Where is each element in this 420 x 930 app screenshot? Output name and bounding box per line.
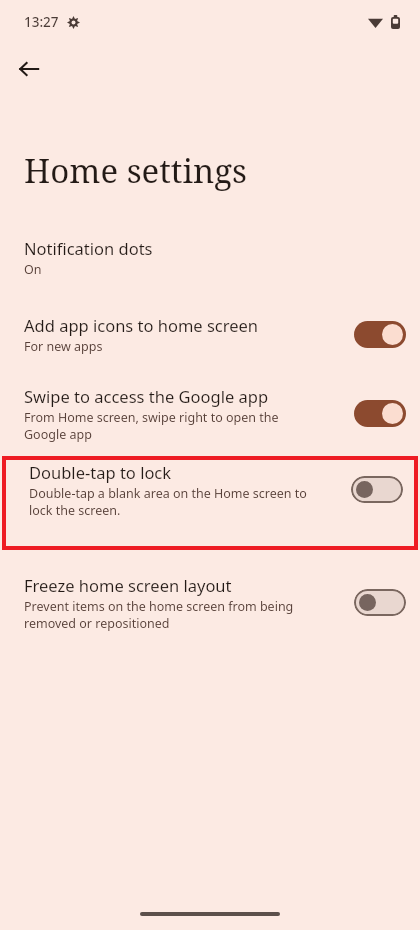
button[interactable]: Back — [10, 50, 48, 88]
button[interactable]: Double-tap to lock — [7, 461, 413, 518]
staticText: From Home screen, swipe right to open th… — [24, 409, 279, 442]
button[interactable]: Add app icons to home screen — [0, 314, 420, 355]
staticText: Add app icons to home screen — [24, 314, 259, 336]
button[interactable]: Swipe to access the Google app — [0, 385, 420, 442]
button[interactable]: Toggle off — [354, 589, 406, 616]
button[interactable]: Toggle on — [354, 321, 406, 348]
button[interactable]: Toggle on — [354, 400, 406, 427]
staticText: Swipe to access the Google app — [24, 385, 269, 407]
staticText: For new apps — [24, 338, 103, 355]
staticText: Freeze home screen layout — [24, 574, 232, 596]
staticText: Prevent items on the home screen from be… — [24, 598, 294, 631]
staticText: Double-tap a blank area on the Home scre… — [29, 485, 307, 518]
button[interactable]: Freeze home screen layout — [0, 574, 420, 631]
button[interactable]: Notification dots — [0, 237, 420, 278]
staticText: 13:27 — [24, 13, 59, 31]
staticText: Notification dots — [24, 237, 153, 259]
staticText: Double-tap to lock — [29, 461, 172, 483]
staticText: Home settings — [24, 148, 247, 193]
button[interactable]: Toggle off — [351, 476, 403, 503]
staticText: On — [24, 261, 42, 278]
